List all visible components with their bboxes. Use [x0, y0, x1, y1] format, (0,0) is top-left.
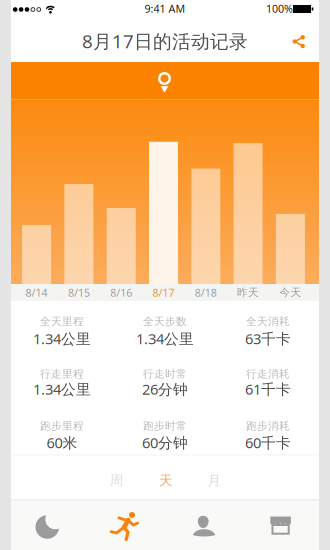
button[interactable]: 8/18 — [185, 99, 227, 301]
staticText: 跑步里程 — [40, 419, 84, 432]
button[interactable]: 我的 — [165, 501, 242, 550]
button[interactable]: 8/15 — [58, 99, 100, 301]
button[interactable]: 昨天 — [227, 99, 269, 301]
staticText: 60米 — [46, 433, 77, 452]
staticText: 昨天 — [237, 286, 259, 299]
staticText: 60分钟 — [142, 433, 188, 452]
staticText: 全天步数 — [143, 315, 187, 328]
button[interactable]: 8/14 — [16, 99, 58, 301]
staticText: 月 — [207, 472, 220, 489]
staticText: 今天 — [279, 286, 301, 299]
staticText: 跑步时常 — [143, 419, 187, 432]
staticText: 行走时常 — [143, 367, 187, 380]
staticText: 9:41 AM — [144, 1, 185, 16]
button[interactable]: 8/17 — [142, 99, 184, 301]
button[interactable]: 今天 — [269, 99, 311, 301]
staticText: 100% — [266, 1, 293, 16]
button[interactable]: 周 — [96, 465, 136, 495]
staticText: 1.34公里 — [33, 329, 91, 348]
staticText: 行走消耗 — [246, 367, 290, 380]
button[interactable]: 天 — [146, 465, 186, 495]
button[interactable]: 商城 — [242, 501, 319, 550]
staticText: 8/18 — [195, 285, 217, 300]
staticText: 全天消耗 — [246, 315, 290, 328]
staticText: 61千卡 — [245, 379, 291, 399]
staticText: 26分钟 — [142, 379, 188, 399]
button[interactable]: 8/16 — [100, 99, 142, 301]
staticText: 1.34公里 — [136, 329, 194, 348]
button[interactable]: 活动 — [88, 501, 165, 550]
staticText: 8/16 — [110, 285, 132, 300]
staticText: 全天里程 — [40, 315, 84, 328]
staticText: 8/17 — [152, 285, 174, 300]
staticText: 行走里程 — [40, 367, 84, 380]
staticText: 63千卡 — [245, 329, 291, 348]
button[interactable]: 月 — [194, 465, 234, 495]
staticText: 8/14 — [26, 285, 48, 300]
button[interactable]: 分享 — [283, 26, 313, 56]
staticText: 天 — [159, 472, 172, 489]
staticText: 周 — [110, 472, 123, 489]
staticText: 60千卡 — [245, 433, 291, 452]
staticText: 跑步消耗 — [246, 419, 290, 432]
button[interactable]: 睡眠 — [11, 501, 88, 550]
staticText: 1.34公里 — [33, 379, 91, 399]
staticText: 8/15 — [68, 285, 90, 300]
staticText: 8月17日的活动记录 — [82, 29, 248, 53]
